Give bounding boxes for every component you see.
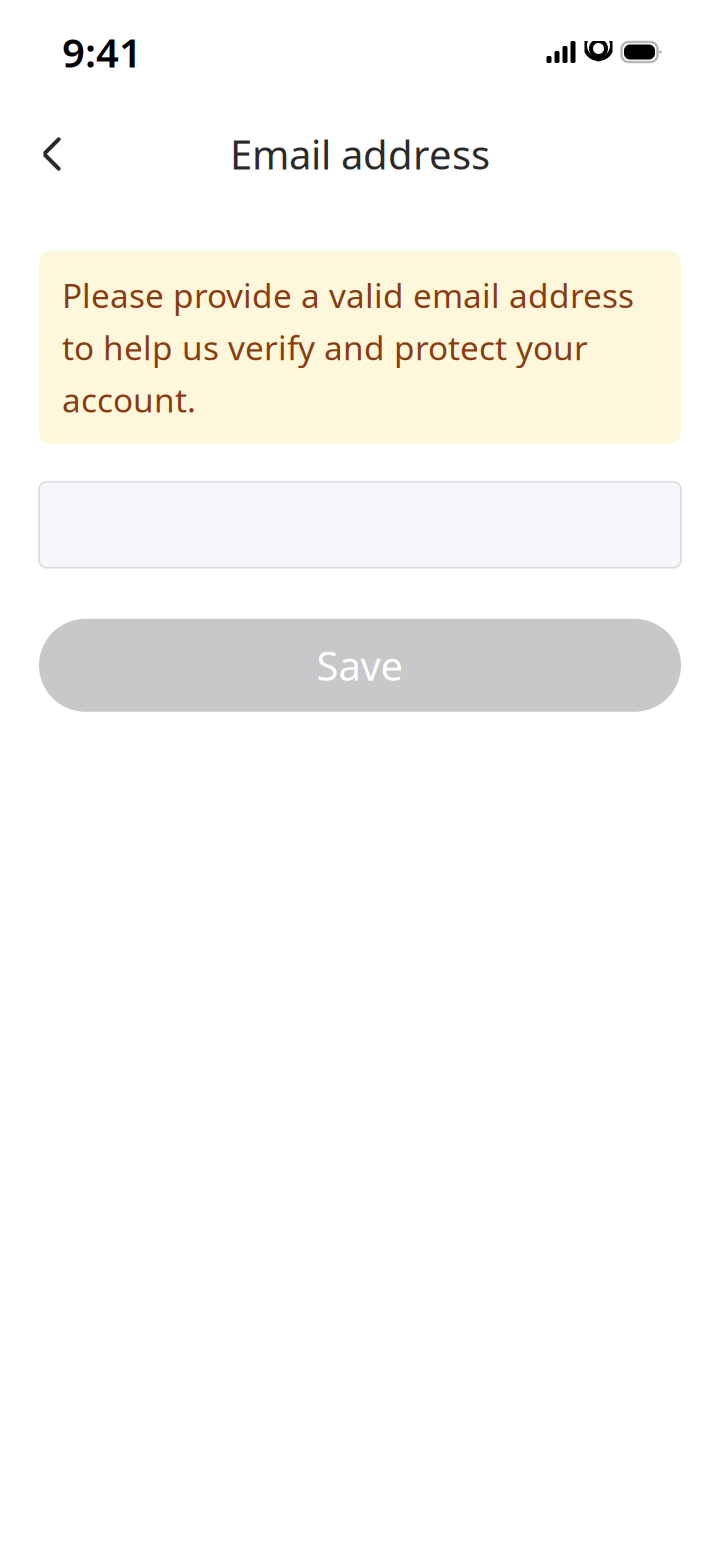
staticText: Email address	[230, 127, 490, 180]
staticText: 9:41	[62, 25, 142, 78]
button[interactable]: Back	[22, 124, 82, 184]
button[interactable]: Save	[0, 619, 720, 712]
staticText: Please provide a valid email address to …	[62, 273, 634, 422]
staticText: Save	[316, 639, 403, 692]
button[interactable]: Email address field	[0, 482, 720, 568]
